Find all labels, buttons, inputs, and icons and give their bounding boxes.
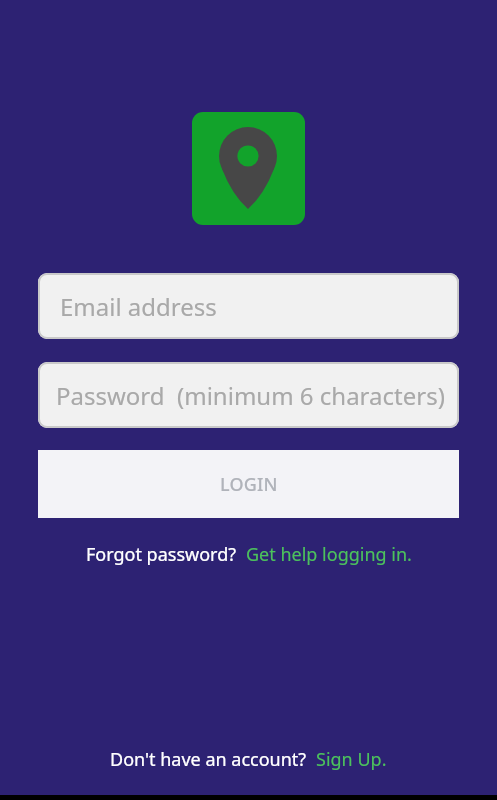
staticText: Email address	[60, 290, 217, 323]
button[interactable]: Sign Up.	[316, 747, 387, 772]
button[interactable]: Get help logging in.	[246, 542, 412, 567]
button[interactable]: LOGIN	[38, 450, 459, 518]
staticText: LOGIN	[220, 472, 278, 497]
staticText: Password (minimum 6 characters)	[56, 379, 445, 412]
button[interactable]: Password (minimum 6 characters)	[38, 362, 459, 428]
button[interactable]: Email address	[38, 273, 459, 339]
staticText: Forgot password?	[86, 542, 246, 567]
staticText: Don't have an account?	[110, 747, 316, 772]
